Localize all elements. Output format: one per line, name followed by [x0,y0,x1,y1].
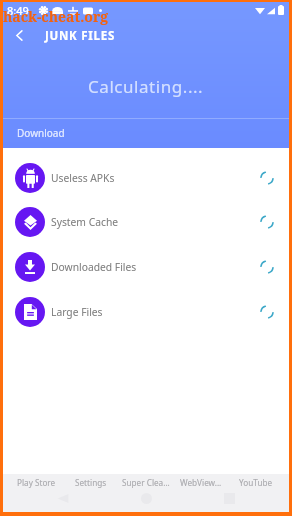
button[interactable]: System Cache [3,205,289,238]
button[interactable]: Play Store [9,474,63,490]
staticText: Download [17,126,65,140]
button[interactable]: YouTube [228,474,283,490]
button[interactable]: Downloaded Files [3,250,289,283]
staticText: YouTube [239,477,273,488]
button[interactable]: Super Clea... [118,474,173,490]
button[interactable]: WebView... [173,474,228,490]
staticText: Downloaded Files [51,260,137,274]
staticText: Useless APKs [51,171,115,185]
staticText: Calculating.... [88,75,204,98]
staticText: 8:49 [7,3,29,18]
staticText: Settings [75,477,107,488]
staticText: Play Store [17,477,56,488]
staticText: JUNK FILES [45,28,115,44]
button[interactable]: Settings [63,474,118,490]
staticText: System Cache [51,215,119,229]
button[interactable]: Large Files [3,295,289,328]
staticText: WebView... [180,477,222,488]
staticText: Large Files [51,305,103,319]
staticText: hack-cheat.org [3,7,109,26]
button[interactable]: Useless APKs [3,161,289,194]
button[interactable]: Back [3,19,35,52]
staticText: Super Clea... [122,477,170,488]
